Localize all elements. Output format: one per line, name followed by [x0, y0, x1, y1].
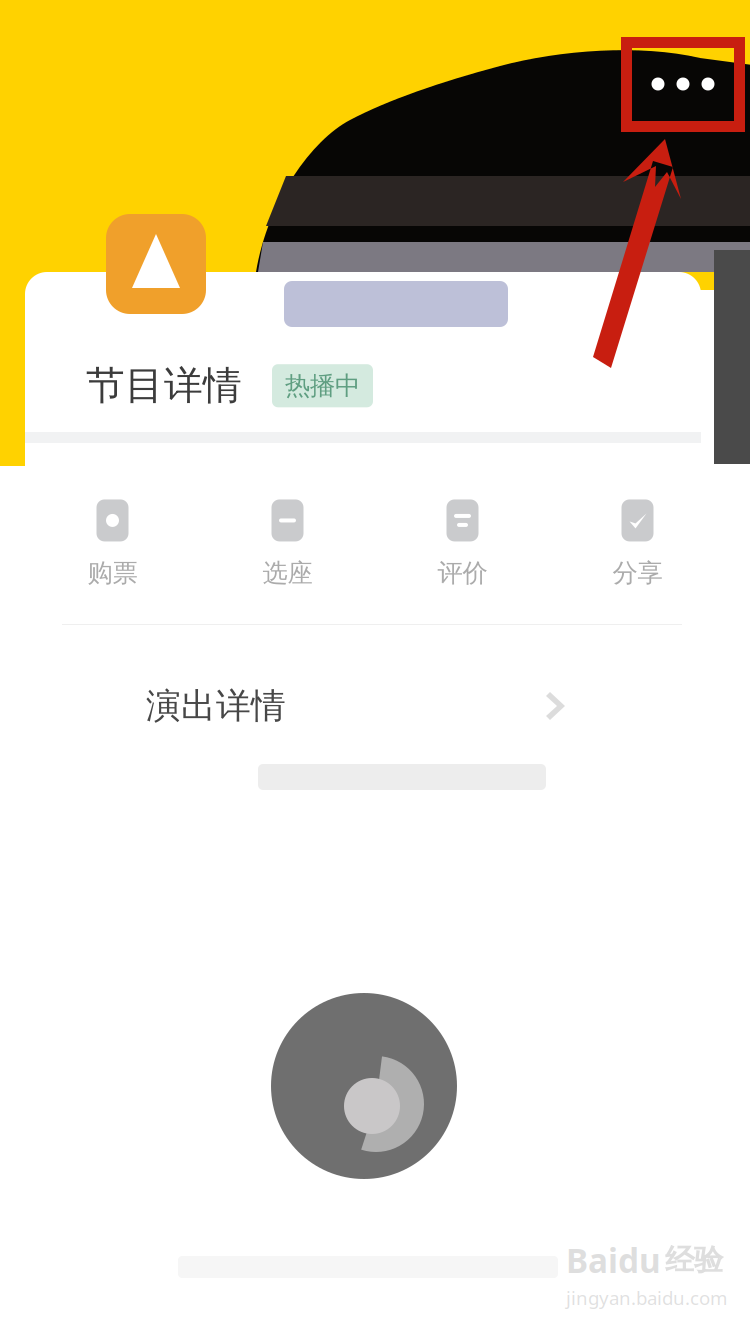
button[interactable]: 选座	[200, 481, 375, 607]
staticText: 评价	[437, 557, 487, 588]
button[interactable]: 评价	[375, 481, 550, 607]
button[interactable]: 购票	[25, 481, 200, 607]
staticText: Baidu	[566, 1238, 661, 1282]
staticText: 节目详情	[86, 362, 242, 409]
staticText: 分享	[612, 557, 662, 588]
staticText: 经验	[665, 1242, 723, 1278]
button[interactable]: 分享	[550, 481, 725, 607]
staticText: 热播中	[285, 370, 360, 401]
staticText: jingyan.baidu.com	[566, 1285, 727, 1310]
button[interactable]: More options	[631, 47, 735, 121]
staticText: 选座	[262, 557, 312, 588]
staticText: 购票	[87, 557, 137, 588]
button[interactable]: 演出详情	[146, 666, 566, 746]
staticText: 演出详情	[146, 685, 286, 727]
